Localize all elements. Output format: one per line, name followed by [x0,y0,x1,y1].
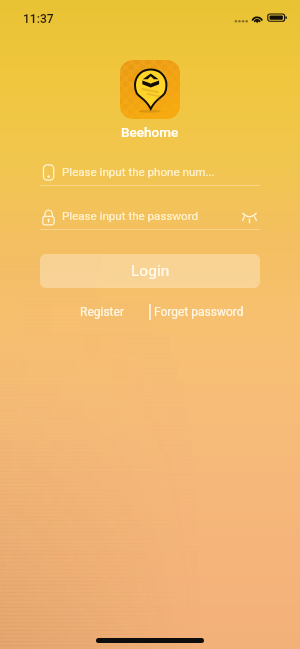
button[interactable]: Login [40,254,260,288]
button[interactable]: Please input the password [40,204,260,227]
staticText: Register [80,305,124,319]
staticText: Beehome [121,124,179,140]
staticText: Please input the phone num... [62,165,260,179]
button[interactable]: Forget password [150,301,248,323]
button[interactable]: Show password [238,205,260,227]
staticText: Forget password [154,305,244,319]
button[interactable]: Register [70,301,134,323]
staticText: Please input the password [62,209,238,223]
staticText: Login [131,262,170,280]
staticText: 11:37 [23,12,54,26]
button[interactable]: Please input the phone num... [40,160,260,183]
